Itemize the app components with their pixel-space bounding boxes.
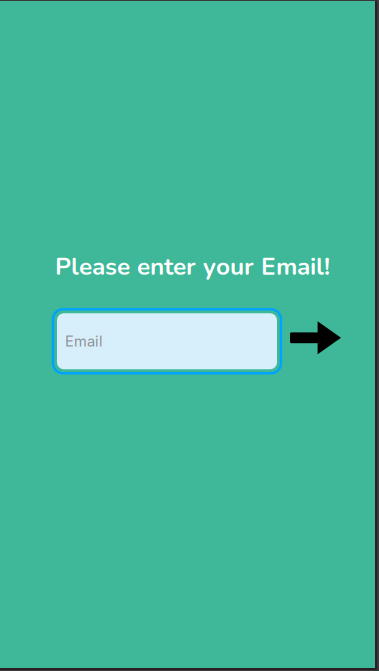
- button[interactable]: Continue: [290, 321, 341, 361]
- staticText: Please enter your Email!: [55, 250, 330, 283]
- staticText: Email: [65, 332, 103, 350]
- button[interactable]: Email address field: [53, 309, 281, 373]
